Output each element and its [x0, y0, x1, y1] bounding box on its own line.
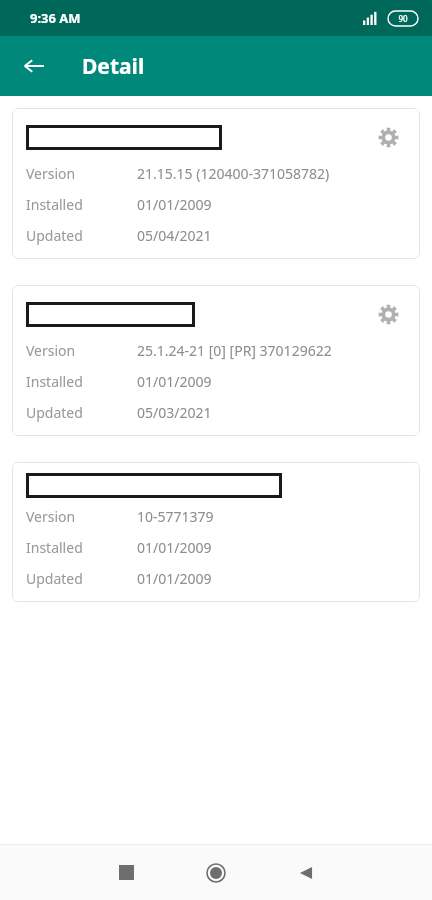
staticText: Version — [26, 164, 137, 183]
staticText: Detail — [82, 52, 145, 81]
staticText: 21.15.15 (120400-371058782) — [137, 164, 330, 183]
staticText: Installed — [26, 372, 137, 391]
staticText: 05/03/2021 — [137, 403, 212, 422]
staticText: 01/01/2009 — [137, 569, 212, 588]
staticText: 25.1.24-21 [0] [PR] 370129622 — [137, 341, 332, 360]
button[interactable]: Settings — [370, 296, 406, 332]
staticText: Installed — [26, 195, 137, 214]
staticText: Updated — [26, 226, 137, 245]
button[interactable]: Back — [10, 42, 58, 90]
staticText: Updated — [26, 403, 137, 422]
staticText: Version — [26, 507, 137, 526]
staticText: 01/01/2009 — [137, 195, 212, 214]
staticText: Updated — [26, 569, 137, 588]
button[interactable]: Version — [12, 462, 420, 602]
button[interactable]: Settings — [12, 285, 420, 436]
staticText: 05/04/2021 — [137, 226, 212, 245]
staticText: 01/01/2009 — [137, 538, 212, 557]
button[interactable]: Recent apps — [81, 845, 171, 900]
staticText: 9:36 AM — [30, 9, 81, 27]
button[interactable]: Home — [171, 845, 261, 900]
staticText: 01/01/2009 — [137, 372, 212, 391]
staticText: 10-5771379 — [137, 507, 214, 526]
button[interactable]: Back — [261, 845, 351, 900]
button[interactable]: Settings — [12, 108, 420, 259]
staticText: 90 — [398, 13, 408, 24]
staticText: Installed — [26, 538, 137, 557]
button[interactable]: Settings — [370, 119, 406, 155]
staticText: Version — [26, 341, 137, 360]
